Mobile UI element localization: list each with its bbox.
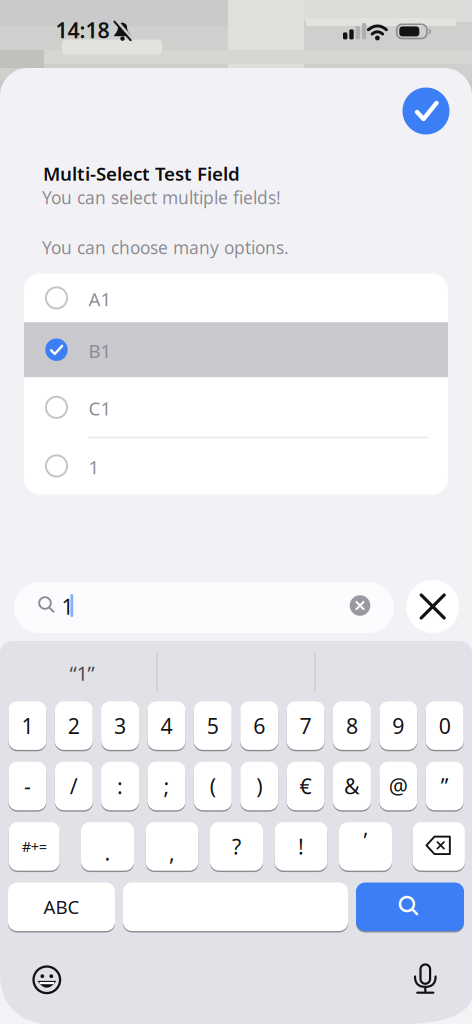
staticText: @ bbox=[389, 772, 408, 800]
button[interactable]: ( bbox=[194, 761, 232, 811]
button[interactable]: A1 bbox=[24, 274, 448, 322]
button[interactable]: ABC bbox=[8, 881, 115, 932]
button[interactable]: / bbox=[55, 761, 93, 811]
staticText: You can choose many options. bbox=[42, 236, 289, 259]
button[interactable]: & bbox=[333, 761, 371, 811]
staticText: You can select multiple fields! bbox=[42, 186, 281, 209]
button[interactable]: Space bbox=[123, 881, 348, 932]
staticText: Multi-Select Test Field bbox=[43, 161, 240, 186]
staticText: - bbox=[24, 772, 31, 800]
staticText: 2 bbox=[68, 711, 80, 740]
staticText: 4 bbox=[160, 711, 172, 740]
button[interactable]: 1 bbox=[8, 700, 46, 751]
staticText: ) bbox=[256, 772, 262, 800]
staticText: 1 bbox=[88, 455, 99, 479]
staticText: ( bbox=[210, 772, 216, 800]
staticText: 9 bbox=[392, 711, 404, 740]
button[interactable]: Search bbox=[14, 582, 394, 633]
staticText: 0 bbox=[439, 711, 451, 740]
button[interactable]: ? bbox=[210, 821, 263, 872]
button[interactable]: 3 bbox=[101, 700, 139, 751]
button[interactable]: ” bbox=[426, 761, 464, 811]
button[interactable]: Done bbox=[402, 87, 449, 134]
button[interactable]: C1 bbox=[24, 377, 448, 437]
staticText: . bbox=[104, 838, 110, 866]
staticText: ABC bbox=[43, 894, 79, 919]
button[interactable]: 8 bbox=[333, 700, 371, 751]
button[interactable]: @ bbox=[379, 761, 417, 811]
staticText: “1” bbox=[69, 660, 94, 686]
button[interactable]: € bbox=[287, 761, 325, 811]
staticText: 1 bbox=[21, 711, 33, 740]
staticText: 8 bbox=[346, 711, 358, 740]
staticText: , bbox=[169, 838, 175, 866]
button[interactable]: #+= bbox=[9, 821, 60, 872]
button[interactable]: Search bbox=[356, 881, 464, 932]
button[interactable]: B1 bbox=[24, 322, 448, 377]
button[interactable]: 4 bbox=[147, 700, 185, 751]
staticText: 14:18 bbox=[55, 16, 109, 44]
staticText: A1 bbox=[88, 286, 111, 311]
staticText: ’ bbox=[363, 826, 367, 854]
button[interactable]: ! bbox=[274, 821, 327, 872]
staticText: € bbox=[300, 772, 312, 800]
button[interactable]: 0 bbox=[426, 700, 464, 751]
button[interactable]: “1” bbox=[12, 651, 152, 695]
button[interactable]: , bbox=[145, 821, 198, 872]
button[interactable]: Dictate bbox=[410, 963, 440, 993]
staticText: 7 bbox=[300, 711, 312, 740]
staticText: #+= bbox=[22, 837, 47, 856]
staticText: & bbox=[344, 772, 360, 800]
button[interactable]: ) bbox=[240, 761, 278, 811]
button[interactable]: 9 bbox=[379, 700, 417, 751]
button[interactable]: 5 bbox=[194, 700, 232, 751]
button[interactable]: : bbox=[101, 761, 139, 811]
staticText: 1 bbox=[61, 592, 73, 621]
staticText: : bbox=[117, 772, 123, 800]
button[interactable]: Emoji bbox=[33, 966, 60, 993]
button[interactable]: 1 bbox=[24, 437, 448, 494]
staticText: 3 bbox=[114, 711, 126, 740]
button[interactable]: Delete bbox=[412, 821, 465, 872]
button[interactable]: 2 bbox=[55, 700, 93, 751]
staticText: C1 bbox=[88, 396, 111, 421]
staticText: ? bbox=[232, 832, 241, 860]
button[interactable]: Close bbox=[406, 580, 459, 633]
button[interactable]: 6 bbox=[240, 700, 278, 751]
staticText: 6 bbox=[253, 711, 265, 740]
staticText: ” bbox=[441, 772, 449, 800]
staticText: ; bbox=[163, 772, 169, 800]
staticText: / bbox=[70, 772, 78, 800]
button[interactable]: 7 bbox=[287, 700, 325, 751]
staticText: 5 bbox=[207, 711, 219, 740]
button[interactable]: - bbox=[8, 761, 46, 811]
staticText: B1 bbox=[88, 338, 111, 363]
staticText: ! bbox=[298, 832, 304, 860]
button[interactable]: ; bbox=[147, 761, 185, 811]
button[interactable]: . bbox=[81, 821, 134, 872]
button[interactable]: ’ bbox=[339, 821, 392, 872]
